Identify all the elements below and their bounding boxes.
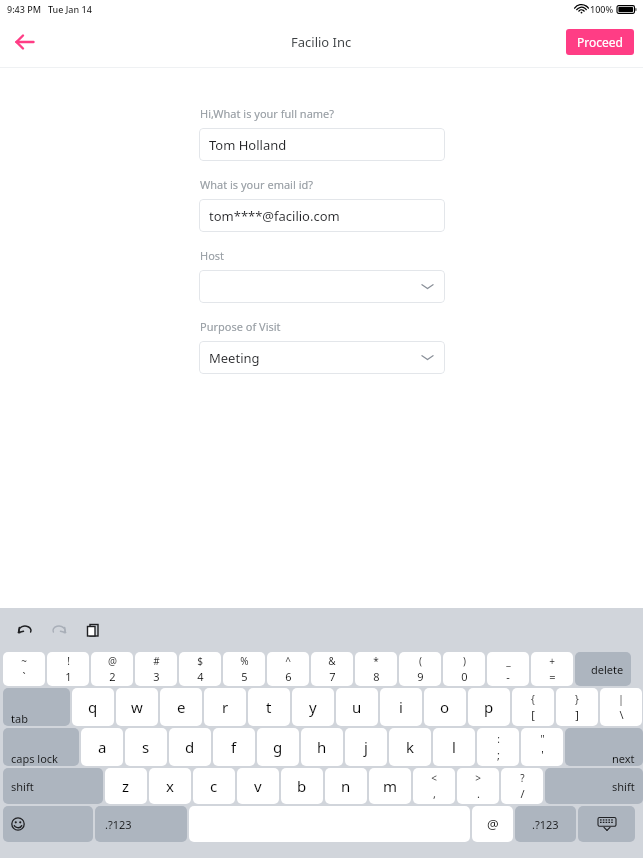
button[interactable]: g [257, 728, 299, 766]
staticText: | [618, 692, 624, 706]
button[interactable]: c [193, 768, 235, 804]
button[interactable]: y [292, 688, 334, 726]
button[interactable]: & [311, 652, 353, 686]
button[interactable]: Redo [46, 617, 72, 643]
button[interactable]: .?123 [515, 806, 576, 842]
button[interactable]: z [105, 768, 147, 804]
button[interactable]: < [413, 768, 455, 804]
button[interactable]: next [565, 728, 643, 766]
button[interactable]: # [135, 652, 177, 686]
button[interactable]: n [325, 768, 367, 804]
button[interactable]: shift [3, 768, 103, 804]
button[interactable]: f [213, 728, 255, 766]
button[interactable]: { [512, 688, 554, 726]
button[interactable]: Proceed [566, 29, 634, 55]
staticText: next [612, 751, 635, 766]
button[interactable]: } [556, 688, 598, 726]
staticText: ; [497, 747, 500, 762]
button[interactable]: v [237, 768, 279, 804]
button[interactable]: Meeting [199, 341, 445, 374]
button[interactable]: $ [179, 652, 221, 686]
staticText: delete [591, 662, 624, 677]
staticText: ^ [285, 654, 291, 668]
staticText: ] [575, 707, 579, 722]
button[interactable]: x [149, 768, 191, 804]
button[interactable]: d [169, 728, 211, 766]
staticText: 7 [329, 669, 336, 684]
button[interactable]: > [457, 768, 499, 804]
button[interactable]: u [336, 688, 378, 726]
staticText: } [575, 692, 579, 706]
staticText: o [440, 697, 450, 717]
button[interactable]: caps lock [3, 728, 79, 766]
staticText: Host [200, 248, 225, 263]
button[interactable]: Undo [12, 617, 38, 643]
button[interactable]: delete [575, 652, 631, 686]
staticText: ' [541, 747, 544, 762]
staticText: @ [487, 815, 499, 833]
button[interactable]: @ [472, 806, 513, 842]
button[interactable]: ? [501, 768, 543, 804]
staticText: 6 [285, 669, 292, 684]
button[interactable]: l [433, 728, 475, 766]
button[interactable]: .?123 [95, 806, 187, 842]
button[interactable]: i [380, 688, 422, 726]
button[interactable]: shift [545, 768, 643, 804]
button[interactable]: Tom Holland [199, 128, 445, 161]
button[interactable]: tab [3, 688, 70, 726]
button[interactable]: q [72, 688, 114, 726]
staticText: > [475, 771, 481, 785]
button[interactable]: w [116, 688, 158, 726]
button[interactable]: o [424, 688, 466, 726]
button[interactable]: t [248, 688, 290, 726]
button[interactable]: a [81, 728, 123, 766]
staticText: Tom Holland [209, 136, 287, 154]
button[interactable]: * [355, 652, 397, 686]
staticText: e [177, 697, 186, 717]
button[interactable]: ( [399, 652, 441, 686]
staticText: c [210, 776, 218, 796]
button[interactable]: ^ [267, 652, 309, 686]
button[interactable]: ~ [3, 652, 45, 686]
staticText: g [273, 737, 283, 757]
button[interactable]: m [369, 768, 411, 804]
staticText: caps lock [11, 751, 58, 766]
button[interactable]: tom****@facilio.com [199, 199, 445, 232]
staticText: Proceed [577, 34, 623, 50]
button[interactable]: @ [91, 652, 133, 686]
button[interactable]: _ [487, 652, 529, 686]
staticText: / [520, 786, 525, 801]
button[interactable]: Emoji [3, 806, 93, 842]
staticText: 4 [197, 669, 204, 684]
button[interactable]: b [281, 768, 323, 804]
button[interactable]: " [521, 728, 563, 766]
staticText: a [98, 737, 107, 757]
button[interactable]: + [531, 652, 573, 686]
button[interactable]: | [600, 688, 642, 726]
button[interactable]: e [160, 688, 202, 726]
staticText: t [266, 697, 272, 717]
staticText: \ [619, 707, 624, 722]
button[interactable]: ! [47, 652, 89, 686]
staticText: b [297, 776, 307, 796]
button[interactable]: j [345, 728, 387, 766]
button[interactable]: % [223, 652, 265, 686]
button[interactable]: : [477, 728, 519, 766]
staticText: j [364, 737, 368, 757]
button[interactable]: k [389, 728, 431, 766]
button[interactable]: p [468, 688, 510, 726]
staticText: f [231, 737, 237, 757]
staticText: 2 [109, 669, 116, 684]
button[interactable]: Hide keyboard [578, 806, 635, 842]
staticText: tab [11, 711, 28, 726]
staticText: ( [419, 654, 422, 668]
button[interactable] [199, 270, 445, 303]
button[interactable]: ) [443, 652, 485, 686]
button[interactable]: s [125, 728, 167, 766]
button[interactable]: h [301, 728, 343, 766]
button[interactable]: Back [8, 25, 42, 59]
button[interactable]: Paste [80, 617, 106, 643]
staticText: .?123 [532, 817, 559, 832]
button[interactable]: r [204, 688, 246, 726]
